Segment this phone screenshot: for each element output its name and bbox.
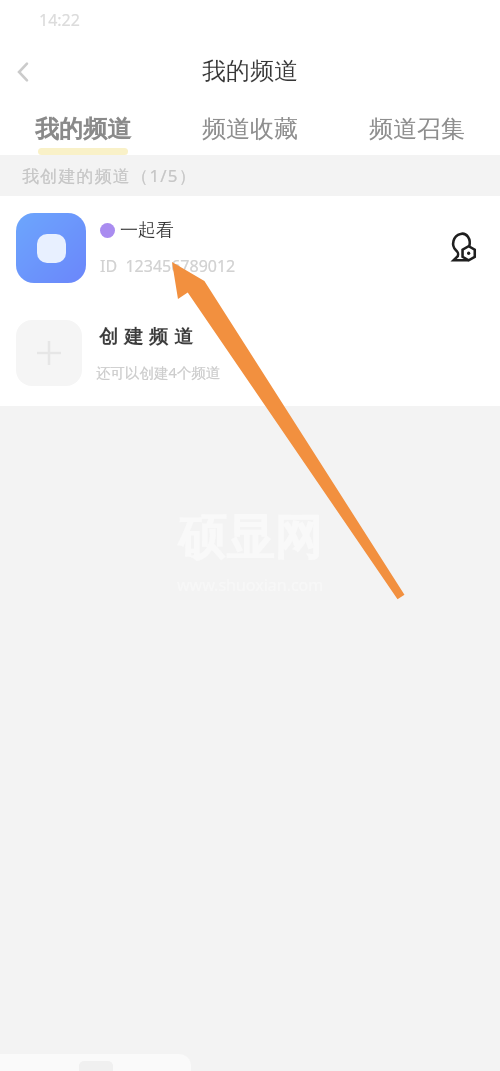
staticText: 频道召集 [369, 114, 465, 144]
staticText: 还可以创建4个频道 [96, 362, 221, 382]
button[interactable]: Manage members [438, 222, 490, 274]
staticText: 一起看 [120, 219, 174, 242]
button[interactable]: 一起看 [0, 196, 500, 300]
staticText: 14:22 [39, 9, 80, 31]
button[interactable]: Back [2, 51, 44, 93]
staticText: 我创建的频道（1/5） [22, 164, 197, 187]
button[interactable]: 创建频道 [0, 300, 500, 406]
staticText: 我的频道 [35, 114, 131, 144]
staticText: 创建频道 [96, 325, 196, 349]
button[interactable]: 我的频道 [0, 99, 166, 155]
staticText: 频道收藏 [202, 114, 298, 144]
staticText: 我的频道 [202, 56, 298, 86]
staticText: ID 123456789012 [100, 255, 236, 277]
button[interactable]: 频道召集 [333, 99, 500, 155]
button[interactable]: 频道收藏 [166, 99, 333, 155]
